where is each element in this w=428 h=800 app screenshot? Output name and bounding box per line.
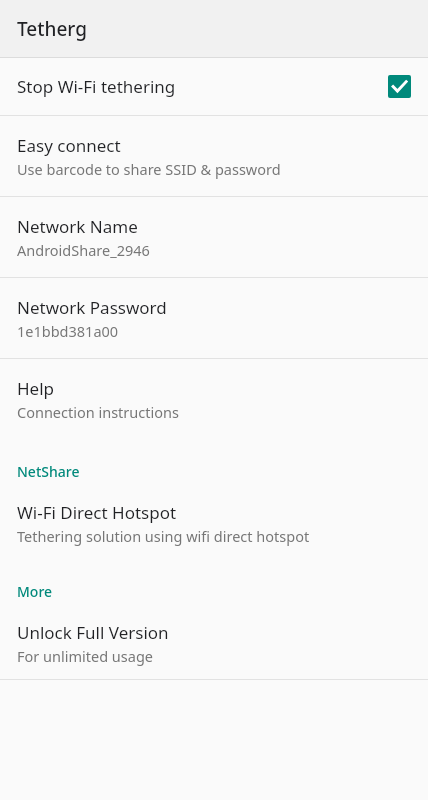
staticText: Tetherg [17,16,87,42]
button[interactable]: Wi-Fi Direct Hotspot [0,487,428,559]
staticText: Easy connect [17,134,121,157]
staticText: NetShare [17,462,80,481]
button[interactable]: Unlock Full Version [0,607,428,679]
staticText: Help [17,377,55,400]
button[interactable]: Help [0,359,428,439]
staticText: Network Password [17,296,167,319]
button[interactable]: Network Password [0,278,428,358]
button[interactable]: Stop Wi-Fi tethering [0,58,428,115]
staticText: Stop Wi-Fi tethering [17,75,176,98]
button[interactable]: Easy connect [0,116,428,196]
staticText: 1e1bbd381a00 [17,321,119,341]
staticText: Network Name [17,215,138,238]
staticText: More [17,582,53,601]
button[interactable]: Network Name [0,197,428,277]
staticText: Use barcode to share SSID & password [17,159,281,179]
other: Stop Wi-Fi tethering checkbox [388,75,411,98]
staticText: AndroidShare_2946 [17,240,150,260]
staticText: Unlock Full Version [17,621,169,644]
staticText: Tethering solution using wifi direct hot… [17,526,310,546]
staticText: For unlimited usage [17,646,153,666]
staticText: Connection instructions [17,402,179,422]
staticText: Wi-Fi Direct Hotspot [17,501,177,524]
